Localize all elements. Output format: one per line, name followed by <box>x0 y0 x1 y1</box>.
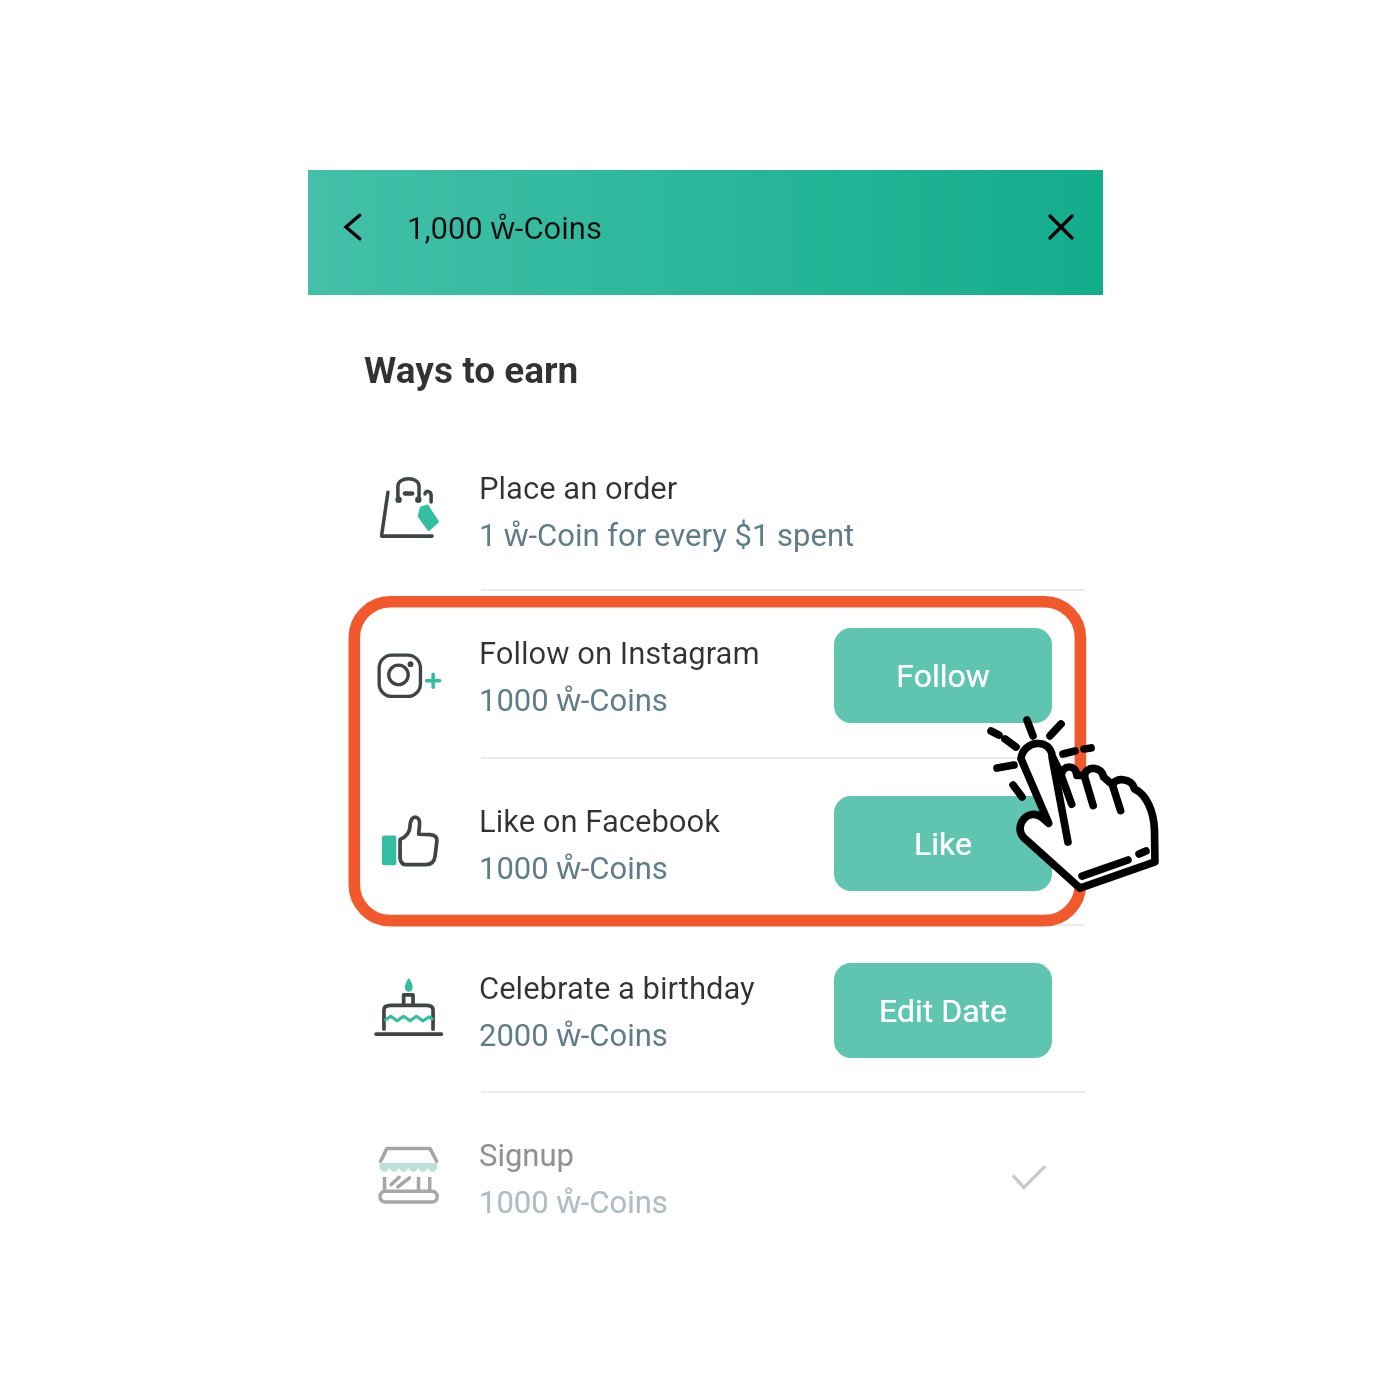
staticText: Edit Date <box>879 992 1007 1030</box>
staticText: 1000 ẘ-Coins <box>479 1180 668 1222</box>
button[interactable]: Follow <box>834 628 1052 723</box>
staticText: Follow <box>896 657 990 695</box>
button[interactable]: Follow on Instagram <box>360 574 1090 741</box>
staticText: 1000 ẘ-Coins <box>479 846 668 888</box>
staticText: 1 ẘ-Coin for every $1 spent <box>479 513 855 555</box>
other: Tap <box>1012 737 1162 887</box>
staticText: Like <box>914 825 972 863</box>
staticText: Signup <box>479 1137 574 1173</box>
button[interactable]: Like on Facebook <box>360 742 1090 909</box>
staticText: 1000 ẘ-Coins <box>479 678 668 720</box>
staticText: Celebrate a birthday <box>479 970 755 1006</box>
staticText: Follow on Instagram <box>479 635 760 671</box>
staticText: 2000 ẘ-Coins <box>479 1013 668 1055</box>
staticText: Ways to earn <box>364 349 579 392</box>
button[interactable]: Close <box>1031 197 1091 257</box>
staticText: Like on Facebook <box>479 803 720 839</box>
staticText: 1,000 ẘ-Coins <box>407 206 602 248</box>
button[interactable]: Back <box>321 197 381 257</box>
button[interactable]: Place an order <box>360 409 1090 576</box>
staticText: Place an order <box>479 470 678 506</box>
button[interactable]: Celebrate a birthday <box>360 909 1090 1076</box>
button[interactable]: Like <box>834 796 1052 891</box>
button[interactable]: Signup <box>360 1076 1090 1243</box>
button[interactable]: Edit Date <box>834 963 1052 1058</box>
